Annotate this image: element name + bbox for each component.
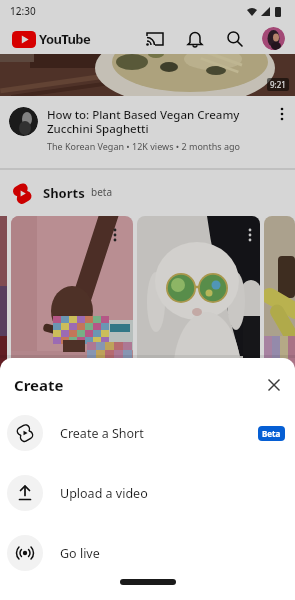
staticText: Upload a video [60, 485, 148, 502]
staticText: Create [14, 375, 64, 395]
button[interactable] [11, 216, 133, 436]
button[interactable]: Create a Short [0, 403, 295, 463]
staticText: 9:21 [270, 79, 286, 90]
button[interactable] [186, 30, 204, 48]
button[interactable] [146, 30, 164, 48]
staticText: How to: Plant Based Vegan Creamy Zucchin… [47, 107, 240, 137]
button[interactable] [267, 378, 281, 392]
staticText: YouTube [39, 30, 91, 48]
staticText: Shorts [43, 184, 85, 202]
button[interactable]: Go live [0, 523, 295, 583]
button[interactable]: How to: Plant Based Vegan Creamy Zucchin… [0, 96, 295, 168]
button[interactable] [137, 216, 260, 436]
button[interactable]: Upload a video [0, 463, 295, 523]
staticText: 12:30 [10, 4, 36, 18]
button[interactable] [275, 107, 289, 121]
staticText: Create a Short [60, 425, 144, 442]
button[interactable] [226, 30, 244, 48]
staticText: beta [91, 185, 113, 199]
button[interactable]: YouTube [12, 30, 91, 48]
button[interactable]: 9:21 [0, 54, 295, 96]
staticText: Go live [60, 545, 100, 562]
button[interactable] [262, 27, 285, 50]
button[interactable] [264, 216, 295, 436]
staticText: The Korean Vegan • 12K views • 2 months … [47, 140, 240, 152]
staticText: Beta [262, 428, 281, 439]
